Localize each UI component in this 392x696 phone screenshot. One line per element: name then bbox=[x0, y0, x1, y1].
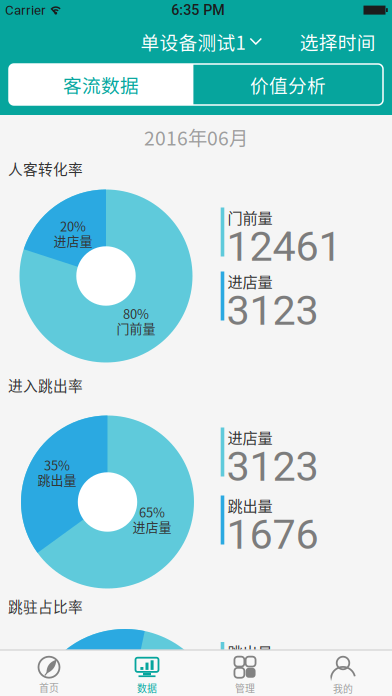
staticText: 20% bbox=[60, 216, 86, 235]
staticText: 首页 bbox=[39, 680, 59, 695]
staticText: 3123 bbox=[226, 442, 318, 491]
button[interactable]: 单设备测试1 bbox=[140, 28, 262, 55]
staticText: 数据 bbox=[137, 681, 157, 695]
staticText: 人客转化率 bbox=[8, 158, 83, 179]
staticText: 跳出量 bbox=[227, 494, 272, 516]
staticText: 3123 bbox=[226, 286, 318, 335]
staticText: 2016年06月 bbox=[144, 123, 248, 151]
staticText: 门前量 bbox=[227, 206, 272, 228]
staticText: 12461 bbox=[226, 222, 341, 271]
staticText: 客流数据 bbox=[63, 71, 139, 98]
button[interactable]: 价值分析 bbox=[193, 64, 382, 105]
staticText: 进店量 bbox=[227, 270, 272, 292]
staticText: 进店量 bbox=[53, 231, 92, 250]
staticText: 管理 bbox=[235, 681, 255, 695]
staticText: 价值分析 bbox=[250, 71, 326, 98]
staticText: 门前量 bbox=[116, 318, 155, 337]
staticText: 6:35 PM bbox=[171, 2, 224, 18]
staticText: 单设备测试1 bbox=[140, 28, 245, 55]
button[interactable]: 客流数据 bbox=[9, 64, 193, 105]
staticText: 65% bbox=[139, 502, 165, 521]
button[interactable]: 首页 bbox=[0, 649, 98, 696]
staticText: 选择时间 bbox=[300, 28, 376, 55]
staticText: 80% bbox=[123, 304, 149, 323]
staticText: 进店量 bbox=[227, 426, 272, 448]
staticText: 跳出量 bbox=[37, 470, 76, 489]
staticText: 1676 bbox=[226, 510, 318, 559]
staticText: Carrier bbox=[5, 2, 46, 18]
button[interactable]: 选择时间 bbox=[300, 28, 376, 55]
staticText: 进店量 bbox=[132, 517, 171, 536]
staticText: 我的 bbox=[333, 681, 353, 696]
button[interactable]: 数据 bbox=[98, 649, 196, 696]
staticText: 进入跳出率 bbox=[8, 374, 83, 396]
button[interactable]: 我的 bbox=[294, 649, 392, 696]
staticText: 跳驻占比率 bbox=[8, 595, 83, 617]
staticText: 35% bbox=[44, 455, 70, 474]
button[interactable]: 管理 bbox=[196, 649, 294, 696]
staticText: 跳出量 bbox=[227, 640, 272, 662]
